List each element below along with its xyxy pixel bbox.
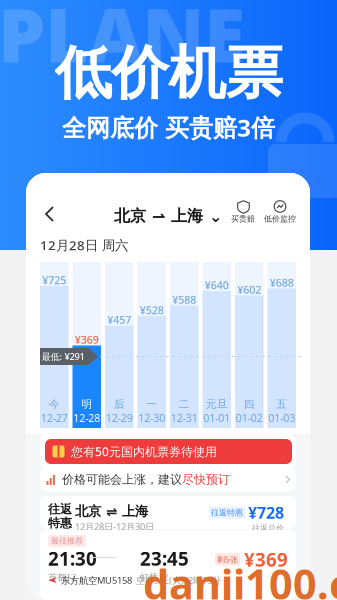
staticText: ¥725 bbox=[42, 273, 66, 287]
staticText: danji100.com bbox=[143, 556, 337, 600]
staticText: 12月28日 周六 bbox=[40, 236, 128, 254]
staticText: 12月28日-12月30日 bbox=[75, 520, 154, 533]
staticText: ¥688 bbox=[270, 276, 294, 290]
staticText: ¥369 bbox=[75, 332, 99, 347]
staticText: 空客33L(大) bbox=[136, 574, 184, 586]
staticText: PLANE bbox=[0, 0, 245, 83]
button[interactable]: 往返 bbox=[40, 496, 296, 529]
staticText: 2时15分 bbox=[188, 574, 221, 586]
button[interactable]: 价格可能会上涨，建议 bbox=[40, 467, 296, 492]
button[interactable]: 最佳推荐 bbox=[40, 530, 296, 600]
staticText: 五 bbox=[276, 398, 287, 411]
staticText: 12-31 bbox=[171, 411, 198, 425]
button[interactable]: 返回 bbox=[38, 199, 64, 229]
staticText: 23:45 bbox=[140, 546, 189, 571]
staticText: ¥728 bbox=[248, 502, 284, 523]
staticText: 今 bbox=[49, 398, 60, 411]
button[interactable]: 您有50元国内机票券待使用 bbox=[40, 434, 296, 468]
staticText: 低价监控 bbox=[264, 214, 296, 224]
staticText: 四 bbox=[244, 398, 255, 411]
button[interactable]: 买贵赔 bbox=[231, 200, 255, 224]
staticText: 买贵赔 bbox=[231, 214, 255, 224]
staticText: 一 bbox=[146, 398, 157, 411]
staticText: ¥457 bbox=[107, 313, 131, 327]
staticText: 全网底价 买贵赔3倍 bbox=[62, 111, 275, 143]
staticText: ¥528 bbox=[140, 303, 164, 317]
button[interactable]: 低价监控 bbox=[264, 200, 296, 224]
staticText: 东方航空MU5158 bbox=[61, 574, 132, 586]
staticText: 12-29 bbox=[106, 411, 133, 425]
staticText: 价格可能会上涨，建议 bbox=[62, 472, 182, 487]
staticText: ¥640 bbox=[205, 278, 229, 292]
staticText: 北京 ⇌ 上海 bbox=[75, 503, 148, 519]
staticText: 12-30 bbox=[138, 411, 165, 425]
staticText: 特惠 bbox=[48, 516, 72, 530]
staticText: 后 bbox=[114, 398, 125, 411]
staticText: 最低: ¥291 bbox=[41, 350, 84, 363]
staticText: 首都T2 bbox=[48, 571, 76, 583]
staticText: 21:30 bbox=[48, 546, 97, 571]
staticText: ¥588 bbox=[172, 292, 196, 307]
staticText: 01-01 bbox=[203, 411, 230, 425]
staticText: 往返 bbox=[48, 502, 72, 517]
staticText: 最佳推荐 bbox=[51, 536, 83, 546]
staticText: ¥369 bbox=[244, 547, 288, 572]
staticText: 剩5张 bbox=[217, 554, 238, 565]
staticText: 12-28 bbox=[73, 411, 100, 425]
staticText: 往返特惠 bbox=[211, 508, 243, 517]
staticText: 01-02 bbox=[236, 411, 263, 425]
staticText: 尽快预订 bbox=[182, 472, 230, 487]
staticText: 您有50元国内机票券待使用 bbox=[71, 443, 217, 459]
staticText: 虹桥T2 bbox=[140, 571, 168, 583]
staticText: 二 bbox=[179, 398, 190, 411]
staticText: 12-27 bbox=[41, 411, 68, 425]
staticText: 北京 ⇀ 上海 ⌄ bbox=[114, 206, 222, 226]
staticText: ¥602 bbox=[237, 282, 261, 297]
staticText: 元旦 bbox=[206, 398, 228, 411]
staticText: 明 bbox=[81, 398, 92, 411]
staticText: 低价机票 bbox=[54, 38, 282, 108]
staticText: 往返总价 bbox=[252, 523, 284, 533]
staticText: 01-03 bbox=[268, 411, 295, 425]
